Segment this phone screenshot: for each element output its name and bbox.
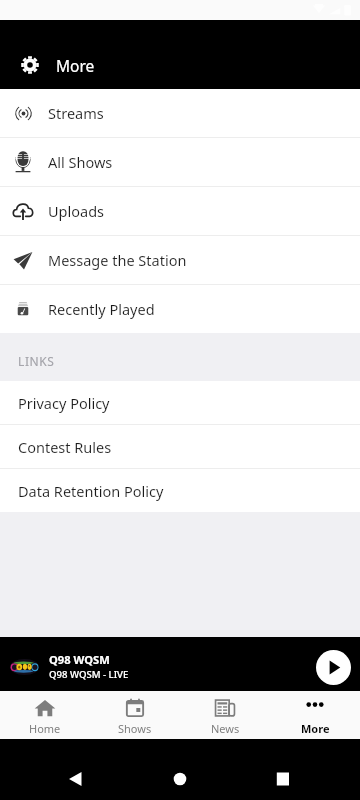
button[interactable]: Shows xyxy=(90,691,180,739)
button[interactable]: More xyxy=(270,691,360,739)
staticText: Shows xyxy=(118,721,152,736)
button[interactable]: All Shows xyxy=(0,138,360,186)
staticText: All Shows xyxy=(48,152,113,172)
button[interactable]: Message the Station xyxy=(0,236,360,284)
button[interactable]: Contest Rules xyxy=(0,425,360,468)
staticText: Contest Rules xyxy=(18,437,112,457)
staticText: Q98 WQSM - LIVE xyxy=(49,668,129,681)
staticText: Recently Played xyxy=(48,299,155,319)
staticText: Data Retention Policy xyxy=(18,481,164,501)
button[interactable]: Privacy Policy xyxy=(0,381,360,424)
button[interactable]: News xyxy=(180,691,270,739)
button[interactable]: Home xyxy=(0,691,90,739)
button[interactable]: Uploads xyxy=(0,187,360,235)
button[interactable]: Data Retention Policy xyxy=(0,469,360,512)
button[interactable]: Recently Played xyxy=(0,285,360,333)
staticText: Uploads xyxy=(48,201,105,221)
staticText: More xyxy=(56,55,95,76)
staticText: More xyxy=(301,721,330,736)
button[interactable]: Streams xyxy=(0,89,360,137)
staticText: Message the Station xyxy=(48,250,187,270)
staticText: News xyxy=(211,721,240,736)
staticText: Privacy Policy xyxy=(18,393,110,413)
staticText: Q98 WQSM xyxy=(49,652,110,667)
staticText: Home xyxy=(29,721,61,736)
staticText: LINKS xyxy=(18,353,55,369)
button[interactable]: Play xyxy=(316,650,351,685)
staticText: Streams xyxy=(48,103,104,123)
